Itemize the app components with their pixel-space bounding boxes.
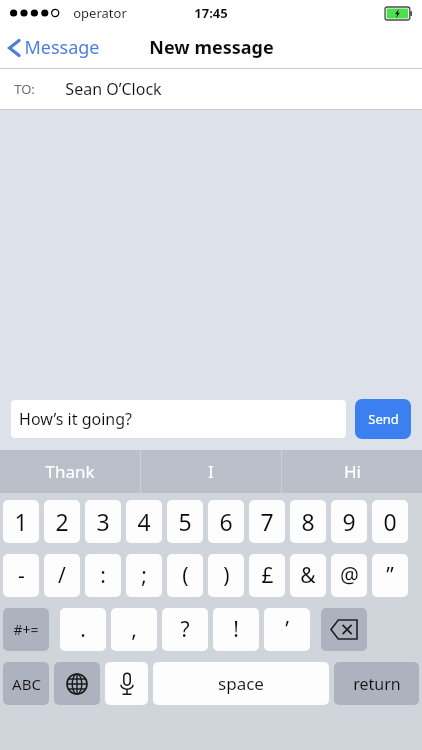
- button[interactable]: 6: [208, 500, 244, 543]
- staticText: 1: [14, 506, 28, 537]
- staticText: 4: [137, 506, 151, 537]
- button[interactable]: I: [141, 450, 281, 493]
- staticText: space: [218, 672, 264, 695]
- button[interactable]: Thank: [0, 450, 140, 493]
- button[interactable]: TO:: [0, 69, 422, 109]
- staticText: -: [18, 561, 25, 590]
- staticText: Hi: [344, 460, 361, 483]
- button[interactable]: 1: [3, 500, 39, 543]
- button[interactable]: @: [331, 554, 367, 597]
- staticText: !: [233, 615, 239, 644]
- staticText: How’s it going?: [19, 408, 132, 430]
- button[interactable]: ?: [162, 608, 208, 651]
- staticText: /: [58, 561, 66, 590]
- staticText: 3: [96, 506, 110, 537]
- staticText: ;: [141, 561, 147, 590]
- button[interactable]: :: [85, 554, 121, 597]
- button[interactable]: ,: [111, 608, 157, 651]
- button[interactable]: 5: [167, 500, 203, 543]
- staticText: (: [182, 561, 189, 590]
- staticText: 0: [383, 506, 397, 537]
- staticText: Sean O’Clock: [65, 78, 162, 100]
- button[interactable]: Message: [8, 35, 100, 60]
- button[interactable]: !: [213, 608, 259, 651]
- button[interactable]: ;: [126, 554, 162, 597]
- button[interactable]: space: [153, 662, 329, 705]
- button[interactable]: 3: [85, 500, 121, 543]
- button[interactable]: Backspace: [321, 608, 367, 651]
- button[interactable]: 0: [372, 500, 408, 543]
- button[interactable]: 2: [44, 500, 80, 543]
- button[interactable]: (: [167, 554, 203, 597]
- button[interactable]: ABC: [3, 662, 49, 705]
- staticText: operator: [73, 4, 127, 22]
- button[interactable]: 7: [249, 500, 285, 543]
- staticText: Send: [368, 410, 399, 428]
- button[interactable]: #+=: [3, 608, 49, 651]
- staticText: 8: [301, 506, 315, 537]
- staticText: 5: [178, 506, 192, 537]
- button[interactable]: 9: [331, 500, 367, 543]
- button[interactable]: How’s it going?: [11, 400, 346, 438]
- button[interactable]: ”: [372, 554, 408, 597]
- staticText: New message: [149, 35, 274, 60]
- staticText: &: [300, 561, 316, 590]
- staticText: ”: [386, 561, 394, 590]
- staticText: :: [100, 561, 106, 590]
- staticText: @: [340, 561, 359, 590]
- staticText: ’: [285, 615, 289, 644]
- staticText: ): [223, 561, 230, 590]
- button[interactable]: return: [334, 662, 419, 705]
- staticText: 7: [260, 506, 274, 537]
- staticText: I: [208, 460, 214, 483]
- staticText: ?: [180, 615, 190, 644]
- staticText: 2: [55, 506, 69, 537]
- button[interactable]: -: [3, 554, 39, 597]
- staticText: return: [353, 673, 401, 695]
- staticText: ,: [131, 615, 137, 644]
- button[interactable]: Change keyboard: [54, 662, 100, 705]
- button[interactable]: /: [44, 554, 80, 597]
- staticText: .: [80, 615, 86, 644]
- staticText: Thank: [45, 460, 95, 483]
- button[interactable]: ): [208, 554, 244, 597]
- button[interactable]: Voice input: [105, 662, 148, 705]
- button[interactable]: Hi: [282, 450, 422, 493]
- button[interactable]: &: [290, 554, 326, 597]
- button[interactable]: 4: [126, 500, 162, 543]
- button[interactable]: ’: [264, 608, 310, 651]
- staticText: £: [261, 561, 274, 590]
- staticText: 17:45: [194, 4, 228, 22]
- button[interactable]: £: [249, 554, 285, 597]
- staticText: 6: [219, 506, 233, 537]
- staticText: TO:: [14, 80, 35, 98]
- staticText: Message: [24, 35, 100, 60]
- staticText: ABC: [12, 674, 41, 694]
- button[interactable]: .: [60, 608, 106, 651]
- button[interactable]: 8: [290, 500, 326, 543]
- staticText: 9: [342, 506, 356, 537]
- button[interactable]: Send: [355, 399, 411, 439]
- staticText: #+=: [13, 620, 39, 639]
